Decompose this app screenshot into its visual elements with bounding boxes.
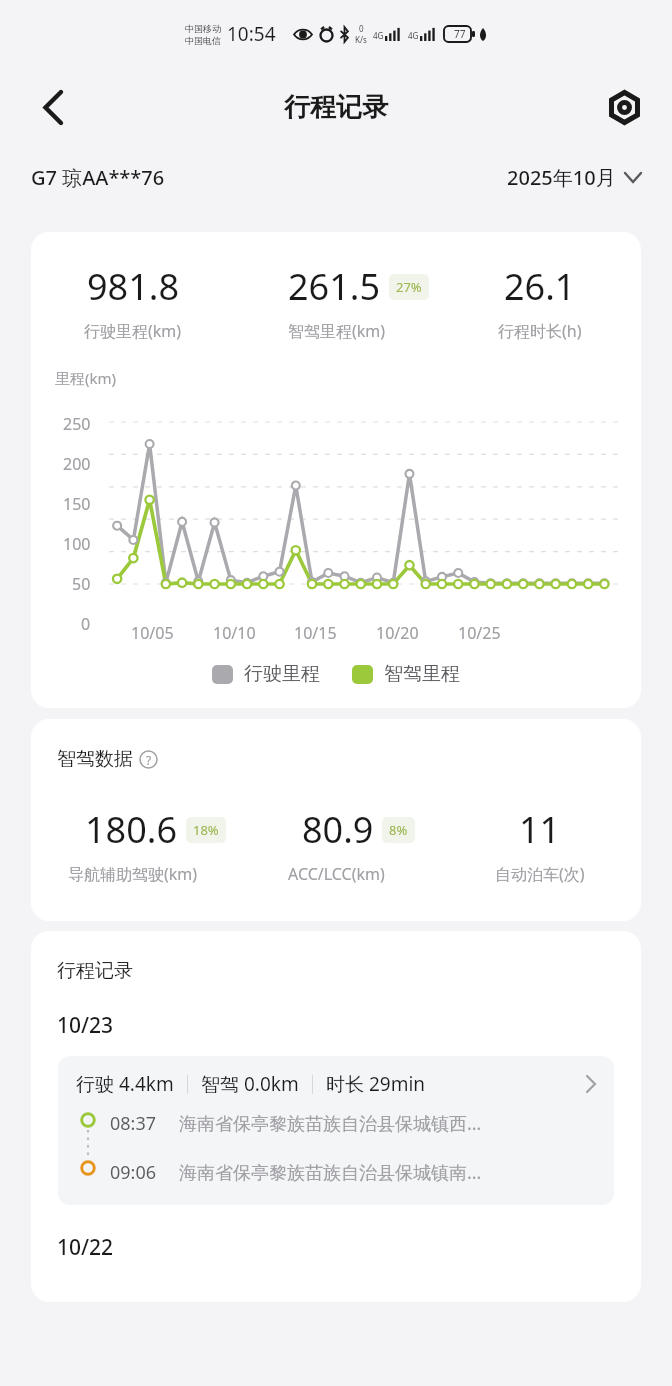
staticText: 77 <box>454 27 466 41</box>
staticText: 09:06 <box>110 1160 157 1185</box>
staticText: ? <box>146 752 152 768</box>
staticText: 250 <box>63 413 91 435</box>
staticText: 27% <box>396 278 422 296</box>
staticText: 150 <box>63 493 91 515</box>
staticText: G7 琼AA***76 <box>31 164 165 191</box>
staticText: 行驶里程 <box>244 662 320 686</box>
button[interactable]: Settings <box>598 81 650 133</box>
staticText: 10/15 <box>294 622 337 644</box>
staticText: 08:37 <box>110 1111 157 1136</box>
staticText: 海南省保亭黎族苗族自治县保城镇南… <box>179 1160 482 1185</box>
staticText: 11 <box>519 805 561 854</box>
staticText: K/s <box>355 34 367 45</box>
staticText: 中国移动 <box>185 23 221 34</box>
button[interactable]: Help <box>139 750 158 769</box>
staticText: 10/22 <box>57 1233 114 1262</box>
staticText: 4G <box>373 30 384 41</box>
staticText: 行驶 4.4km <box>76 1071 174 1097</box>
staticText: 行程记录 <box>57 959 133 983</box>
staticText: 行程时长(h) <box>498 320 582 342</box>
button[interactable]: 行驶 4.4km <box>58 1056 614 1205</box>
button[interactable]: 981.8 <box>31 232 641 708</box>
staticText: 4G <box>408 30 419 41</box>
staticText: 10/10 <box>213 622 256 644</box>
staticText: 26.1 <box>504 262 576 311</box>
button[interactable]: 智驾数据 <box>31 719 641 921</box>
staticText: 80.9 <box>302 805 374 854</box>
button[interactable]: 2025年10月 <box>507 164 641 191</box>
staticText: 10/05 <box>131 622 174 644</box>
staticText: 10/23 <box>57 1011 114 1040</box>
staticText: 2025年10月 <box>507 164 616 191</box>
staticText: ACC/LCC(km) <box>288 863 385 885</box>
staticText: 智驾里程 <box>384 662 460 686</box>
staticText: 50 <box>72 573 91 595</box>
staticText: 8% <box>389 821 408 839</box>
staticText: 0 <box>81 613 91 635</box>
staticText: 18% <box>193 821 219 839</box>
staticText: 261.5 <box>288 262 381 311</box>
staticText: 行程记录 <box>284 91 388 124</box>
staticText: 自动泊车(次) <box>495 863 585 885</box>
staticText: 981.8 <box>87 262 180 311</box>
staticText: 10/25 <box>458 622 501 644</box>
staticText: 时长 29min <box>326 1071 426 1097</box>
staticText: 导航辅助驾驶(km) <box>68 863 198 885</box>
staticText: 中国电信 <box>185 35 221 46</box>
staticText: 100 <box>63 533 91 555</box>
staticText: 里程(km) <box>55 368 117 388</box>
staticText: 10:54 <box>227 21 276 47</box>
staticText: 200 <box>63 453 91 475</box>
staticText: 海南省保亭黎族苗族自治县保城镇西… <box>179 1111 482 1136</box>
staticText: 0 <box>359 23 364 34</box>
staticText: 智驾数据 <box>57 747 133 771</box>
staticText: 10/20 <box>376 622 419 644</box>
staticText: 智驾 0.0km <box>201 1071 299 1097</box>
staticText: 智驾里程(km) <box>288 320 386 342</box>
staticText: 180.6 <box>85 805 178 854</box>
staticText: 行驶里程(km) <box>84 320 182 342</box>
button[interactable]: Back <box>26 81 78 133</box>
